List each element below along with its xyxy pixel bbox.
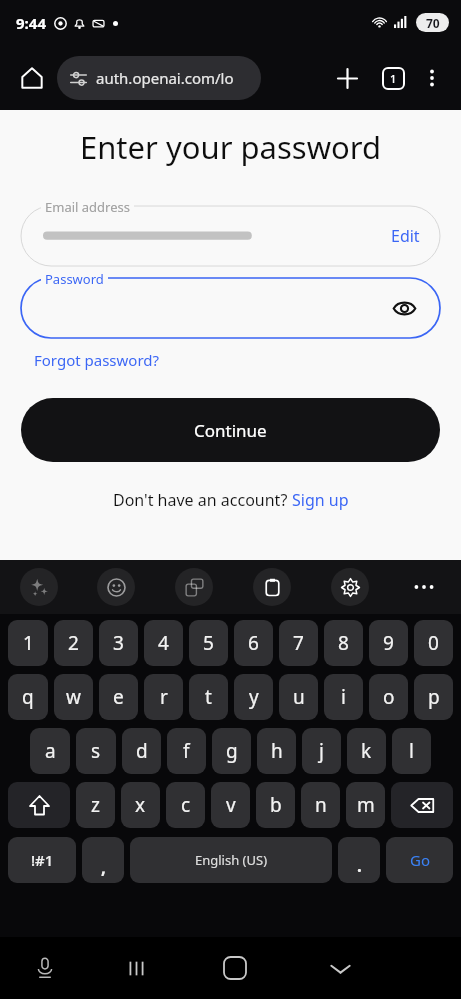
staticText: q: [22, 684, 34, 710]
button[interactable]: 8: [324, 620, 363, 666]
staticText: f: [183, 738, 190, 764]
staticText: 70: [426, 15, 440, 31]
staticText: t: [205, 684, 212, 710]
button[interactable]: h: [257, 728, 296, 774]
button[interactable]: Sign up: [292, 489, 349, 511]
button[interactable]: c: [166, 782, 205, 828]
button[interactable]: More options: [416, 62, 448, 94]
staticText: j: [319, 738, 324, 764]
button[interactable]: Voice input: [28, 951, 62, 985]
staticText: a: [45, 738, 56, 764]
staticText: 9: [383, 630, 394, 656]
button[interactable]: k: [347, 728, 386, 774]
button[interactable]: p: [414, 674, 453, 720]
button[interactable]: f: [167, 728, 206, 774]
staticText: Continue: [194, 419, 267, 442]
staticText: auth.openai.com/lo: [96, 68, 234, 88]
button[interactable]: Go: [386, 837, 453, 883]
button[interactable]: Recent apps: [117, 949, 155, 987]
button[interactable]: m: [346, 782, 385, 828]
staticText: e: [113, 684, 124, 710]
button[interactable]: w: [54, 674, 93, 720]
staticText: l: [409, 738, 414, 764]
button[interactable]: Emoji: [97, 568, 135, 606]
button[interactable]: n: [301, 782, 340, 828]
button[interactable]: .: [338, 837, 380, 883]
button[interactable]: l: [392, 728, 431, 774]
button[interactable]: 5: [189, 620, 228, 666]
button[interactable]: !#1: [8, 837, 76, 883]
staticText: x: [135, 792, 146, 818]
button[interactable]: Backspace: [391, 782, 453, 828]
staticText: z: [91, 792, 100, 818]
button[interactable]: Home: [13, 59, 51, 97]
button[interactable]: Shift: [8, 782, 70, 828]
button[interactable]: a: [30, 728, 70, 774]
staticText: 3: [113, 630, 124, 656]
staticText: 9:44: [16, 13, 46, 33]
button[interactable]: d: [122, 728, 161, 774]
button[interactable]: j: [302, 728, 341, 774]
button[interactable]: Edit: [391, 225, 420, 247]
button[interactable]: o: [369, 674, 408, 720]
button[interactable]: s: [76, 728, 116, 774]
button[interactable]: Suggestions: [20, 568, 58, 606]
button[interactable]: Clipboard: [253, 568, 291, 606]
staticText: Don't have an account?: [113, 489, 292, 511]
button[interactable]: Translate: [175, 568, 213, 606]
button[interactable]: Edit: [21, 206, 440, 266]
button[interactable]: i: [324, 674, 363, 720]
button[interactable]: q: [8, 674, 48, 720]
button[interactable]: 0: [414, 620, 453, 666]
staticText: w: [66, 684, 81, 710]
staticText: 8: [338, 630, 349, 656]
button[interactable]: 1: [8, 620, 48, 666]
staticText: 0: [428, 630, 439, 656]
button[interactable]: 4: [144, 620, 183, 666]
staticText: p: [428, 684, 440, 710]
button[interactable]: b: [256, 782, 295, 828]
staticText: Email address: [45, 198, 130, 216]
button[interactable]: More: [407, 570, 441, 604]
staticText: English (US): [195, 851, 268, 869]
button[interactable]: Show password: [21, 278, 440, 338]
button[interactable]: Hide keyboard: [321, 949, 359, 987]
staticText: 5: [203, 630, 214, 656]
staticText: v: [226, 792, 236, 818]
button[interactable]: New tab: [330, 61, 364, 95]
button[interactable]: auth.openai.com/lo: [57, 56, 261, 100]
staticText: m: [357, 792, 375, 818]
button[interactable]: 7: [279, 620, 318, 666]
button[interactable]: e: [99, 674, 138, 720]
button[interactable]: g: [212, 728, 251, 774]
button[interactable]: Tabs: [376, 61, 410, 95]
staticText: 4: [158, 630, 169, 656]
button[interactable]: t: [189, 674, 228, 720]
button[interactable]: 2: [54, 620, 93, 666]
staticText: h: [271, 738, 283, 764]
button[interactable]: Show password: [389, 293, 419, 323]
staticText: r: [160, 684, 168, 710]
staticText: y: [249, 684, 259, 710]
button[interactable]: Home: [215, 948, 255, 988]
button[interactable]: Settings: [331, 568, 369, 606]
button[interactable]: English (US): [130, 837, 332, 883]
button[interactable]: y: [234, 674, 273, 720]
button[interactable]: Forgot password?: [34, 350, 160, 370]
button[interactable]: v: [211, 782, 250, 828]
staticText: k: [361, 738, 372, 764]
button[interactable]: z: [76, 782, 115, 828]
staticText: Password: [45, 270, 104, 288]
button[interactable]: Continue: [21, 398, 440, 462]
button[interactable]: r: [144, 674, 183, 720]
staticText: i: [341, 684, 346, 710]
button[interactable]: u: [279, 674, 318, 720]
button[interactable]: x: [121, 782, 160, 828]
staticText: 1: [390, 71, 397, 86]
staticText: o: [383, 684, 395, 710]
button[interactable]: 6: [234, 620, 273, 666]
staticText: 2: [68, 630, 79, 656]
button[interactable]: 9: [369, 620, 408, 666]
button[interactable]: 3: [99, 620, 138, 666]
button[interactable]: ,: [82, 837, 124, 883]
